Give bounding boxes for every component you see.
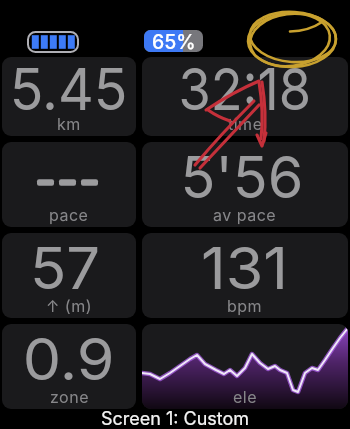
button[interactable]: 57: [2, 233, 136, 318]
button[interactable]: ele: [142, 324, 348, 409]
button[interactable]: 5.45: [2, 57, 136, 136]
staticText: km: [57, 114, 81, 133]
staticText: time: [228, 114, 263, 133]
button[interactable]: 32:18: [142, 57, 348, 136]
staticText: av pace: [213, 205, 277, 224]
staticText: ↑ (m): [46, 296, 93, 315]
staticText: 0.9: [23, 324, 115, 394]
button[interactable]: pace: [2, 142, 136, 227]
staticText: 65%: [152, 30, 196, 52]
button[interactable]: 65%: [144, 30, 203, 52]
staticText: ele: [233, 387, 258, 406]
staticText: bpm: [227, 296, 263, 315]
button[interactable]: 0.9: [2, 324, 136, 409]
staticText: 131: [201, 233, 289, 303]
staticText: 5.45: [10, 57, 128, 124]
staticText: pace: [49, 205, 89, 224]
button[interactable]: 5'56: [142, 142, 348, 227]
staticText: 5'56: [181, 142, 303, 212]
staticText: Screen 1: Custom: [101, 408, 250, 429]
staticText: zone: [50, 387, 89, 406]
staticText: 32:18: [178, 57, 312, 124]
button[interactable]: 131: [142, 233, 348, 318]
staticText: 57: [30, 233, 101, 303]
